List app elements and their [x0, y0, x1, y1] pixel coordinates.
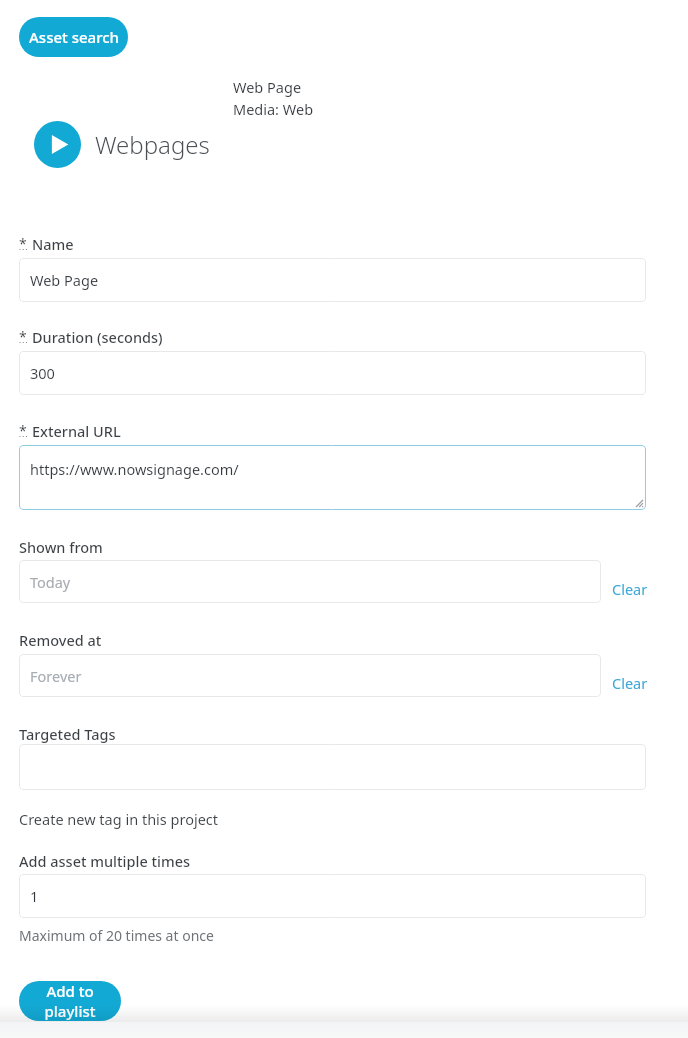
button[interactable]: https://www.nowsignage.com/ [19, 445, 646, 510]
button[interactable]: Play webpages [34, 121, 81, 168]
staticText: Add asset multiple times [19, 851, 191, 871]
staticText: Duration (seconds) [32, 327, 163, 347]
staticText: Removed at [19, 630, 102, 650]
staticText: Media: Web [233, 99, 314, 119]
staticText: * [19, 234, 27, 253]
staticText: Clear [612, 579, 648, 599]
staticText: Today [30, 572, 71, 592]
staticText: Web Page [30, 270, 99, 290]
button[interactable]: Today [19, 560, 601, 603]
staticText: Web Page [233, 77, 302, 97]
staticText: Maximum of 20 times at once [19, 926, 214, 945]
button[interactable]: 1 [19, 874, 646, 918]
staticText: Add to playlist [19, 981, 121, 1021]
staticText: Targeted Tags [19, 724, 116, 744]
staticText: Asset search [29, 27, 119, 47]
button[interactable]: Clear [610, 577, 650, 601]
staticText: Shown from [19, 537, 103, 557]
button[interactable]: Web Page [19, 258, 646, 302]
staticText: Clear [612, 673, 648, 693]
staticText: Name [32, 234, 74, 254]
button[interactable]: Forever [19, 654, 601, 697]
button[interactable]: Clear [610, 671, 650, 695]
staticText: 300 [30, 363, 55, 383]
staticText: Webpages [95, 128, 210, 161]
button[interactable]: Asset search [19, 17, 128, 57]
staticText: Forever [30, 666, 82, 686]
staticText: https://www.nowsignage.com/ [30, 459, 239, 479]
button[interactable] [19, 744, 646, 790]
button[interactable]: 300 [19, 351, 646, 395]
staticText: * [19, 421, 27, 440]
button[interactable]: Add to playlist [19, 981, 121, 1021]
staticText: 1 [30, 886, 39, 906]
staticText: External URL [32, 421, 121, 441]
button[interactable]: Create new tag in this project [19, 809, 219, 829]
staticText: * [19, 327, 27, 346]
